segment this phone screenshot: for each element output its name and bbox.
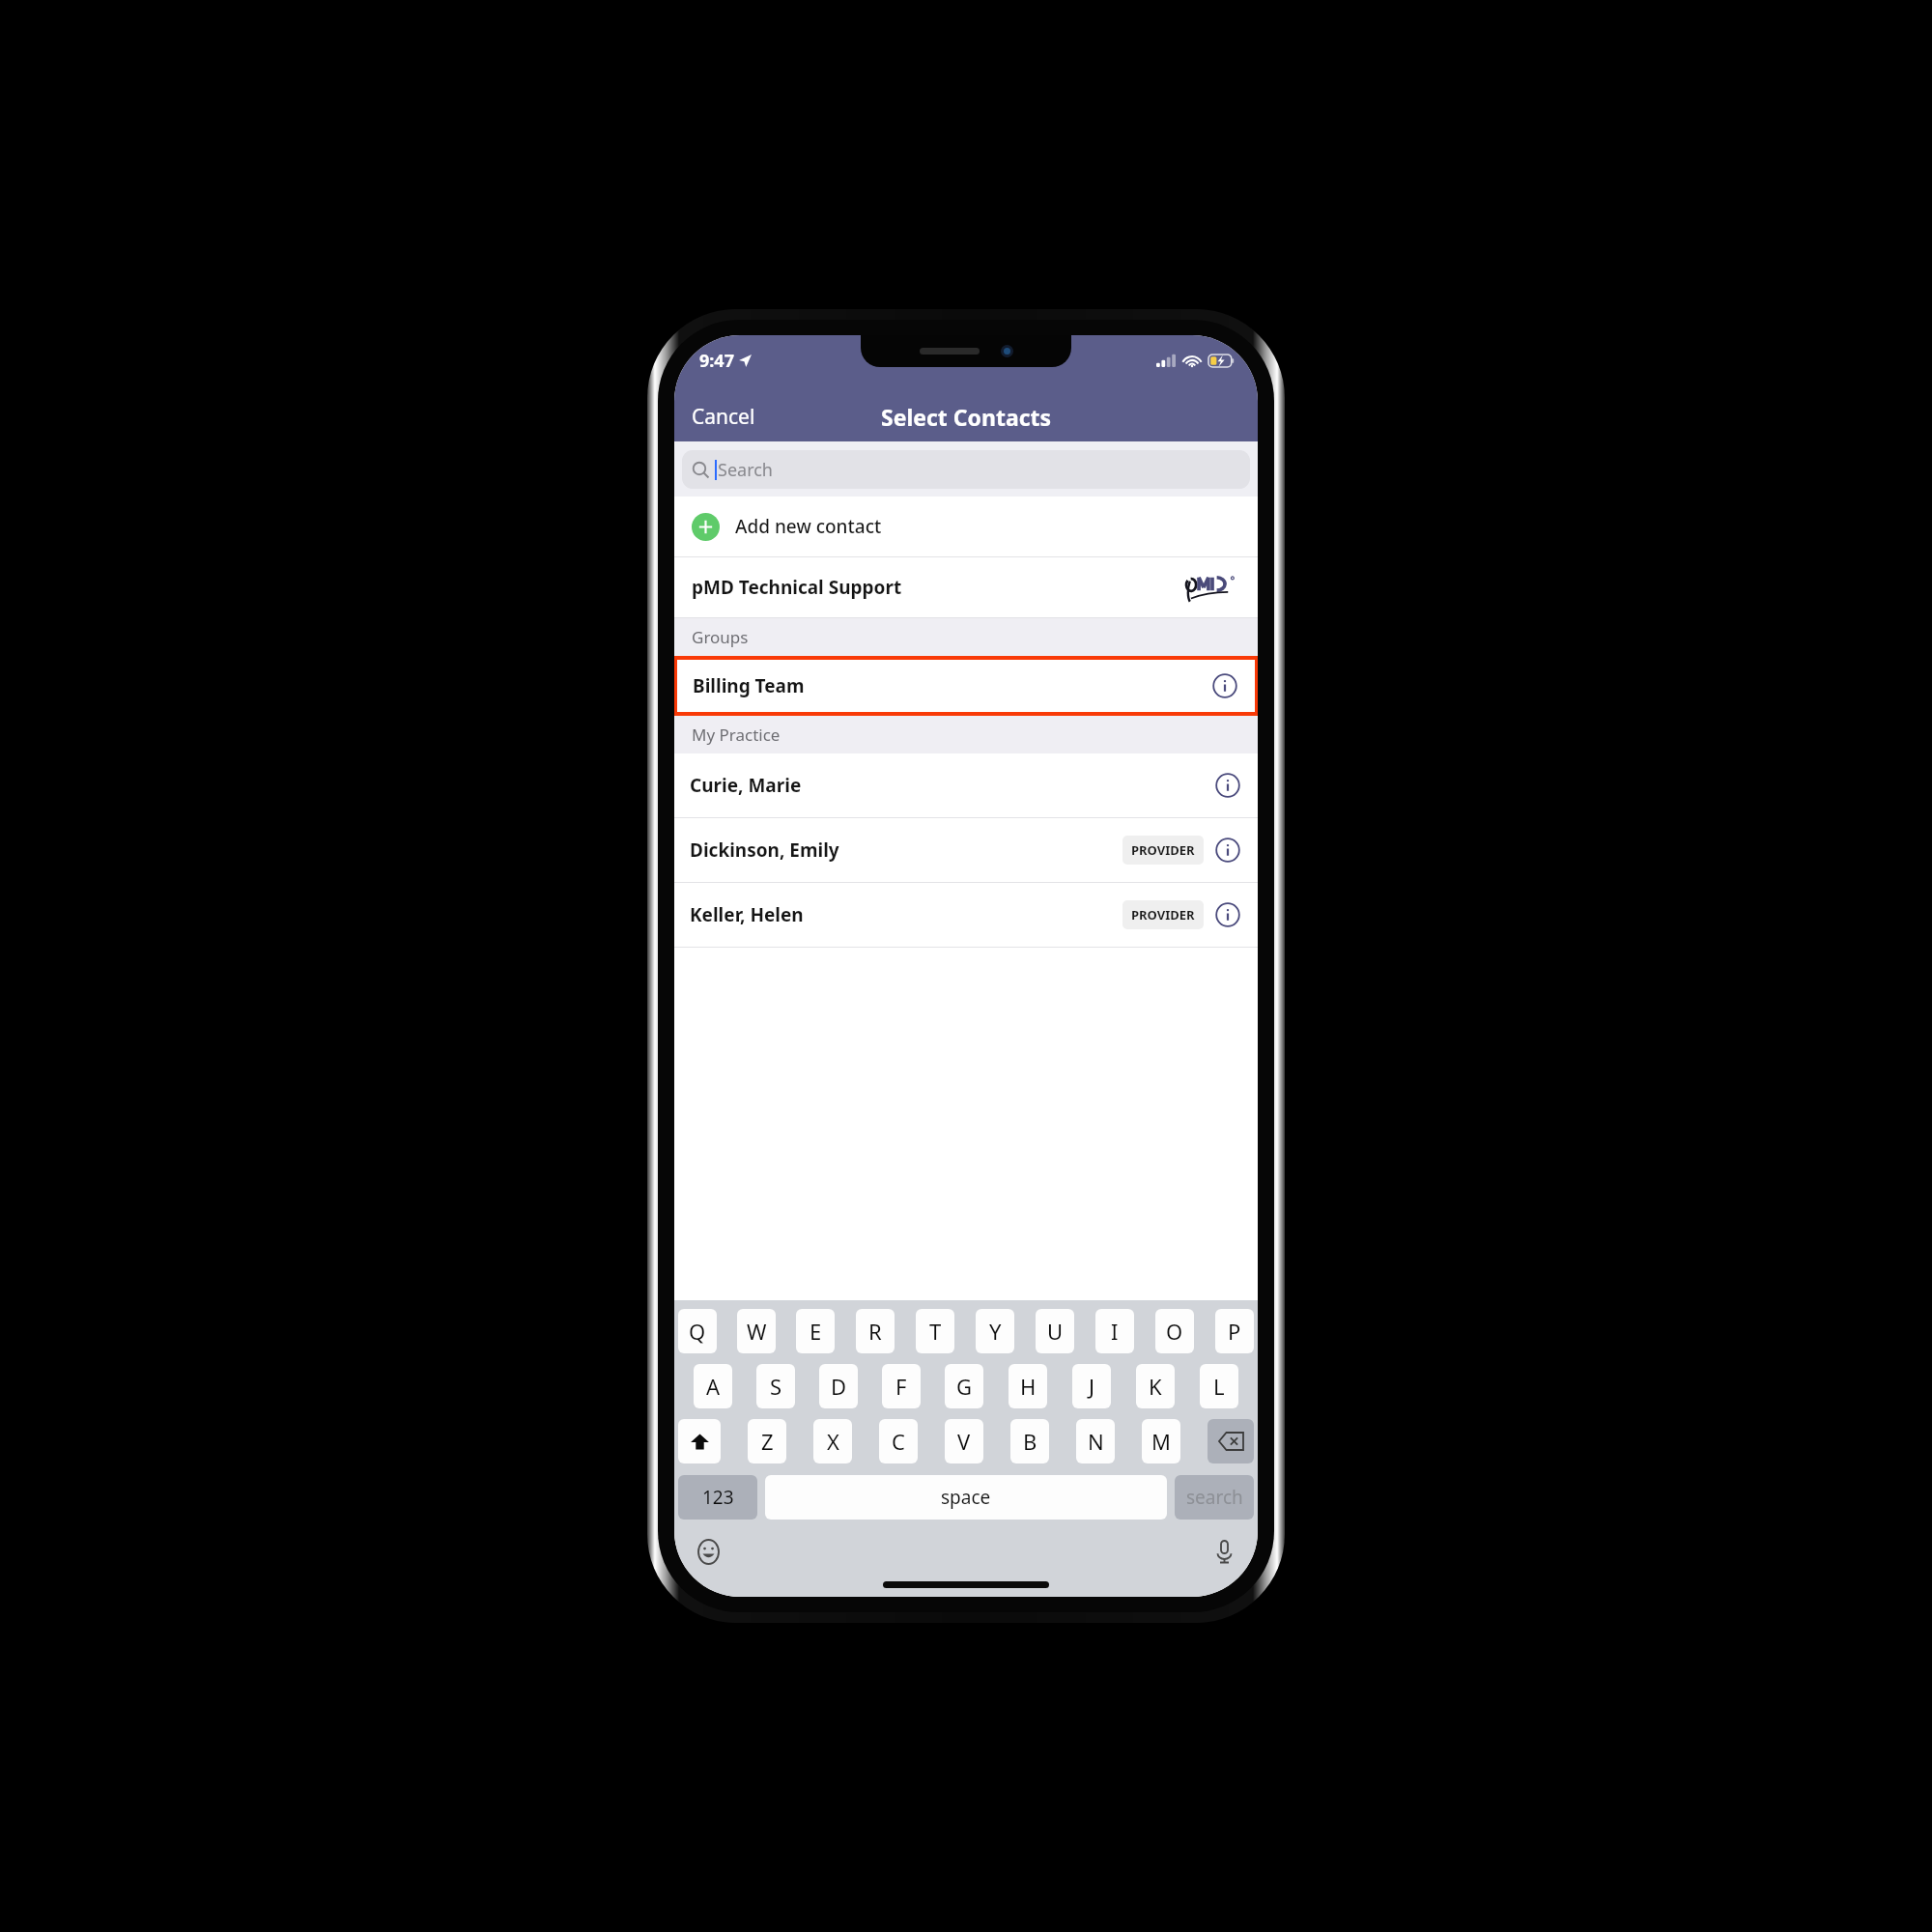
staticText: space: [941, 1485, 991, 1510]
staticText: M: [1151, 1427, 1171, 1456]
staticText: R: [868, 1317, 882, 1346]
button[interactable]: Z: [748, 1419, 786, 1463]
staticText: PROVIDER: [1131, 906, 1195, 923]
staticText: J: [1089, 1372, 1095, 1401]
staticText: 9:47: [699, 349, 734, 373]
staticText: Curie, Marie: [690, 773, 802, 798]
staticText: Billing Team: [693, 673, 805, 698]
button[interactable]: Dickinson, Emily: [674, 818, 1258, 882]
button[interactable]: Emoji: [692, 1535, 724, 1568]
staticText: B: [1023, 1427, 1037, 1456]
staticText: Y: [989, 1317, 1002, 1346]
staticText: Q: [689, 1317, 706, 1346]
staticText: 123: [702, 1485, 734, 1510]
staticText: U: [1047, 1317, 1064, 1346]
button[interactable]: Keller, Helen: [674, 883, 1258, 947]
staticText: K: [1149, 1372, 1162, 1401]
staticText: Groups: [692, 626, 749, 648]
button[interactable]: search: [1175, 1475, 1254, 1520]
staticText: S: [770, 1372, 782, 1401]
button[interactable]: D: [819, 1364, 858, 1408]
button[interactable]: Curie, Marie: [674, 753, 1258, 817]
staticText: C: [892, 1427, 905, 1456]
button[interactable]: Info: [1213, 836, 1242, 865]
button[interactable]: Shift: [678, 1419, 721, 1463]
staticText: E: [810, 1317, 822, 1346]
button[interactable]: Dictate: [1207, 1535, 1240, 1568]
button[interactable]: Backspace: [1207, 1419, 1254, 1463]
button[interactable]: R: [856, 1309, 895, 1353]
staticText: T: [929, 1317, 942, 1346]
staticText: Dickinson, Emily: [690, 838, 839, 863]
button[interactable]: J: [1072, 1364, 1111, 1408]
staticText: Z: [761, 1427, 774, 1456]
button[interactable]: M: [1142, 1419, 1180, 1463]
staticText: My Practice: [692, 724, 781, 746]
button[interactable]: V: [945, 1419, 983, 1463]
button[interactable]: Q: [678, 1309, 717, 1353]
staticText: N: [1088, 1427, 1104, 1456]
staticText: Cancel: [692, 403, 755, 431]
button[interactable]: I: [1095, 1309, 1134, 1353]
staticText: L: [1213, 1372, 1225, 1401]
staticText: F: [895, 1372, 907, 1401]
button[interactable]: W: [737, 1309, 776, 1353]
button[interactable]: Info: [1210, 671, 1239, 700]
staticText: D: [831, 1372, 847, 1401]
button[interactable]: G: [945, 1364, 983, 1408]
button[interactable]: Y: [976, 1309, 1014, 1353]
button[interactable]: 123: [678, 1475, 757, 1520]
staticText: Search: [718, 458, 773, 482]
button[interactable]: Info: [1213, 771, 1242, 800]
staticText: V: [957, 1427, 971, 1456]
staticText: Keller, Helen: [690, 902, 804, 927]
staticText: W: [747, 1317, 767, 1346]
button[interactable]: P: [1215, 1309, 1254, 1353]
button[interactable]: pMD Technical Support: [674, 557, 1258, 617]
button[interactable]: Billing Team: [677, 660, 1255, 712]
button[interactable]: Info: [1213, 900, 1242, 929]
staticText: G: [956, 1372, 973, 1401]
button[interactable]: C: [879, 1419, 918, 1463]
button[interactable]: U: [1036, 1309, 1074, 1353]
button[interactable]: K: [1136, 1364, 1175, 1408]
button[interactable]: O: [1155, 1309, 1194, 1353]
staticText: Add new contact: [735, 514, 882, 539]
staticText: Select Contacts: [881, 402, 1052, 432]
button[interactable]: X: [813, 1419, 852, 1463]
staticText: O: [1166, 1317, 1183, 1346]
staticText: PROVIDER: [1131, 841, 1195, 859]
button[interactable]: A: [694, 1364, 732, 1408]
staticText: search: [1186, 1485, 1243, 1510]
button[interactable]: H: [1009, 1364, 1047, 1408]
button[interactable]: B: [1010, 1419, 1049, 1463]
button[interactable]: Add new contact: [674, 497, 1258, 556]
staticText: A: [706, 1372, 721, 1401]
button[interactable]: Search: [682, 450, 1250, 489]
button[interactable]: E: [796, 1309, 835, 1353]
button[interactable]: L: [1200, 1364, 1238, 1408]
button[interactable]: N: [1076, 1419, 1115, 1463]
button[interactable]: space: [765, 1475, 1167, 1520]
staticText: X: [827, 1427, 839, 1456]
staticText: H: [1020, 1372, 1037, 1401]
button[interactable]: Cancel: [674, 397, 773, 437]
staticText: P: [1228, 1317, 1241, 1346]
button[interactable]: F: [882, 1364, 921, 1408]
staticText: I: [1111, 1317, 1119, 1346]
staticText: pMD Technical Support: [692, 575, 902, 600]
button[interactable]: S: [756, 1364, 795, 1408]
button[interactable]: T: [916, 1309, 954, 1353]
